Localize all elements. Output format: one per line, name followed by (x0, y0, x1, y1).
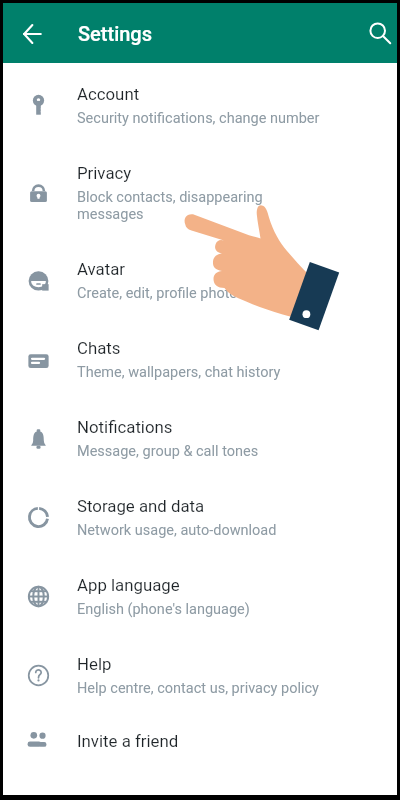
button[interactable]: Help (3, 633, 397, 712)
button[interactable]: Account (3, 63, 397, 142)
staticText: Privacy (77, 163, 132, 183)
staticText: English (phone's language) (77, 601, 250, 618)
staticText: Avatar (77, 259, 126, 279)
staticText: Help centre, contact us, privacy policy (77, 680, 319, 697)
staticText: Network usage, auto-download (77, 522, 277, 539)
button[interactable]: Notifications (3, 396, 397, 475)
staticText: Help (77, 654, 112, 674)
staticText: Message, group & call tones (77, 443, 259, 460)
staticText: Settings (78, 22, 153, 45)
button[interactable]: Search (355, 12, 397, 54)
staticText: Theme, wallpapers, chat history (77, 364, 281, 381)
staticText: Storage and data (77, 496, 205, 516)
staticText: Chats (77, 338, 121, 358)
button[interactable]: Privacy (3, 142, 397, 238)
staticText: Block contacts, disappearing messages (77, 189, 327, 223)
button[interactable]: App language (3, 554, 397, 633)
button[interactable]: Back (12, 14, 52, 54)
staticText: Security notifications, change number (77, 110, 320, 127)
button[interactable]: Storage and data (3, 475, 397, 554)
staticText: Invite a friend (77, 731, 179, 751)
button[interactable]: Invite a friend (3, 712, 397, 766)
staticText: Account (77, 84, 140, 104)
button[interactable]: Avatar (3, 238, 397, 317)
button[interactable]: Chats (3, 317, 397, 396)
staticText: Notifications (77, 417, 173, 437)
staticText: Create, edit, profile photo (77, 285, 238, 302)
staticText: App language (77, 575, 180, 595)
